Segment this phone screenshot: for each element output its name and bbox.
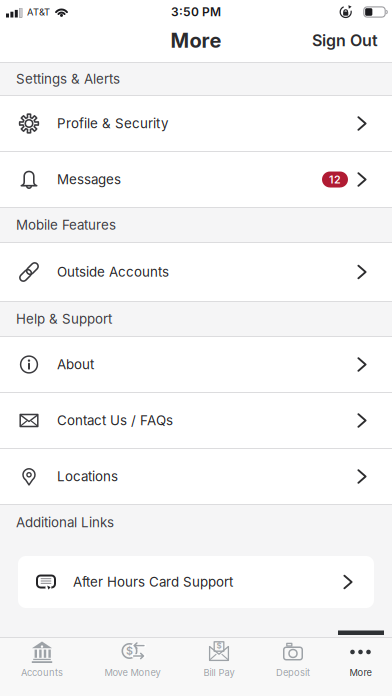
staticText: $ — [216, 641, 221, 650]
staticText: Bill Pay — [203, 667, 234, 678]
staticText: Move Money — [104, 667, 160, 678]
button[interactable]: $ — [84, 641, 181, 678]
button[interactable]: Profile & Security — [0, 96, 392, 151]
staticText: Deposit — [276, 667, 310, 678]
staticText: Outside Accounts — [57, 264, 169, 280]
staticText: Additional Links — [16, 515, 114, 530]
button[interactable]: About — [0, 337, 392, 392]
staticText: About — [57, 357, 94, 372]
staticText: Contact Us / FAQs — [57, 413, 173, 428]
button[interactable]: Outside Accounts — [0, 243, 392, 301]
staticText: Sign Out — [312, 31, 378, 50]
button[interactable]: Locations — [0, 449, 392, 504]
button[interactable]: Contact Us / FAQs — [0, 393, 392, 448]
staticText: More — [170, 29, 221, 52]
staticText: Help & Support — [16, 311, 112, 327]
staticText: Profile & Security — [57, 116, 168, 131]
button[interactable]: Messages — [0, 152, 392, 207]
staticText: Accounts — [21, 667, 63, 678]
button[interactable]: Sign Out — [312, 31, 378, 50]
button[interactable]: $ — [181, 641, 257, 678]
staticText: Settings & Alerts — [16, 71, 120, 87]
staticText: Mobile Features — [16, 217, 116, 233]
staticText: $ — [126, 645, 133, 657]
staticText: Messages — [57, 172, 121, 187]
staticText: 12 — [329, 173, 341, 186]
staticText: Locations — [57, 469, 118, 484]
staticText: 3:50 PM — [171, 5, 221, 19]
button[interactable]: Accounts — [0, 641, 84, 678]
button[interactable]: More — [329, 641, 392, 678]
staticText: AT&T — [27, 6, 50, 17]
button[interactable]: Deposit — [257, 641, 329, 678]
button[interactable]: After Hours Card Support — [18, 556, 374, 608]
staticText: More — [349, 667, 371, 678]
staticText: After Hours Card Support — [73, 574, 233, 590]
